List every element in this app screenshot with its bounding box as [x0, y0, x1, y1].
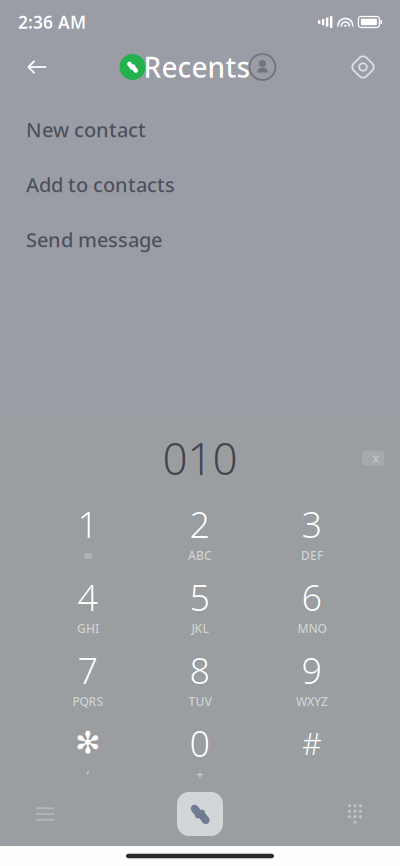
staticText: DEF — [301, 547, 323, 563]
button[interactable]: Keypad — [322, 786, 388, 842]
button[interactable]: New contact — [0, 102, 400, 157]
button[interactable]: More options — [12, 786, 78, 842]
button[interactable]: Delete — [346, 436, 400, 480]
staticText: TUV — [188, 693, 211, 709]
staticText: # — [302, 723, 322, 763]
button[interactable]: Add to contacts — [0, 157, 400, 212]
button[interactable]: 2 — [144, 494, 256, 567]
button[interactable]: 0 — [144, 713, 256, 786]
staticText: , — [86, 760, 89, 776]
staticText: WXYZ — [296, 693, 328, 709]
button[interactable]: 9 — [256, 640, 368, 713]
staticText: JKL — [191, 620, 208, 636]
staticText: 3 — [301, 500, 322, 548]
button[interactable]: # — [256, 713, 368, 786]
staticText: 4 — [77, 573, 98, 621]
staticText: 2 — [189, 500, 210, 548]
staticText: + — [196, 766, 203, 782]
button[interactable]: Send message — [0, 212, 400, 267]
staticText: MNO — [297, 620, 326, 636]
staticText: PQRS — [72, 693, 103, 709]
button[interactable]: 1 — [32, 494, 144, 567]
button[interactable]: 6 — [256, 567, 368, 640]
staticText: 2:36 AM — [18, 10, 86, 33]
staticText: 6 — [301, 573, 322, 621]
staticText: 1 — [77, 500, 98, 548]
staticText: Add to contacts — [26, 171, 175, 198]
staticText: 010 — [162, 429, 237, 487]
button[interactable]: 3 — [256, 494, 368, 567]
button[interactable]: 8 — [144, 640, 256, 713]
button[interactable]: 4 — [32, 567, 144, 640]
button[interactable]: Call — [167, 786, 233, 842]
staticText: Recents — [143, 48, 250, 86]
staticText: 7 — [77, 646, 98, 694]
button[interactable]: ✻ — [32, 713, 144, 786]
button[interactable]: 7 — [32, 640, 144, 713]
button[interactable]: Settings — [340, 44, 386, 90]
staticText: New contact — [26, 116, 146, 143]
staticText: Send message — [26, 226, 162, 253]
staticText: GHI — [77, 620, 99, 636]
staticText: 9 — [301, 646, 322, 694]
staticText: x — [372, 450, 379, 466]
button[interactable]: Back — [14, 44, 60, 90]
staticText: 0 — [189, 719, 210, 767]
staticText: ✻ — [75, 726, 101, 760]
staticText: 5 — [189, 573, 210, 621]
staticText: 8 — [189, 646, 210, 694]
staticText: ∞ — [83, 549, 93, 562]
staticText: ABC — [188, 547, 212, 563]
button[interactable]: 5 — [144, 567, 256, 640]
